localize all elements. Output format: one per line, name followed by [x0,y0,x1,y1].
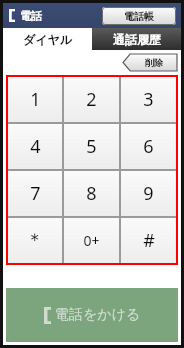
button[interactable]: 7 [8,171,62,216]
button[interactable]: 6 [121,124,176,169]
button[interactable]: 4 [8,124,62,169]
button[interactable]: 9 [121,171,176,216]
staticText: 通話履歴 [113,32,161,47]
button[interactable]: 3 [121,77,176,122]
staticText: 電話帳 [124,10,154,23]
staticText: 3 [143,87,154,112]
staticText: 2 [86,87,97,112]
button[interactable]: 2 [64,77,119,122]
button[interactable]: 1 [8,77,62,122]
button[interactable]: 電話をかける [6,288,178,342]
staticText: 7 [30,181,41,206]
staticText: 0+ [83,231,100,250]
staticText: ＊ [26,229,44,252]
button[interactable]: 通話履歴 [92,28,181,50]
button[interactable]: ＊ [8,218,62,263]
staticText: 削除 [145,57,163,68]
staticText: 電話をかける [55,306,141,324]
staticText: ダイヤル [23,32,73,47]
staticText: 9 [143,181,154,206]
staticText: 6 [143,134,154,159]
button[interactable]: 削除 [123,54,177,71]
button[interactable]: # [121,218,176,263]
staticText: 4 [30,134,41,159]
staticText: # [143,228,155,253]
button[interactable]: 5 [64,124,119,169]
staticText: 8 [86,181,97,206]
staticText: 1 [30,87,41,112]
button[interactable]: 0+ [64,218,119,263]
button[interactable]: ダイヤル [3,28,92,50]
button[interactable]: 8 [64,171,119,216]
staticText: 電話 [20,9,42,23]
button[interactable]: 電話帳 [102,7,176,25]
staticText: 5 [86,134,97,159]
